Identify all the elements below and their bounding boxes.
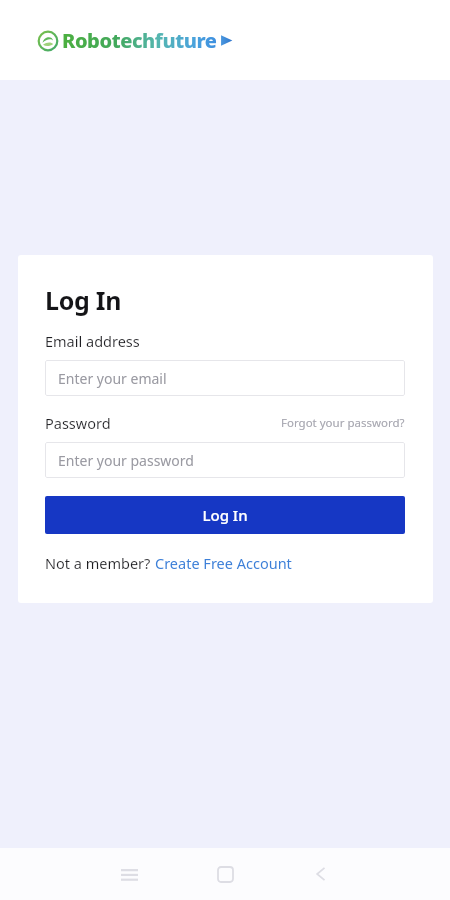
staticText: Enter your email (58, 369, 167, 388)
button[interactable]: Robotechfuture (38, 27, 233, 54)
staticText: Password (45, 413, 111, 433)
button[interactable]: Home (177, 848, 273, 900)
button[interactable]: Forgot your password? (281, 415, 405, 431)
staticText: Log In (45, 283, 122, 317)
staticText: Enter your password (58, 451, 194, 470)
staticText: Create Free Account (155, 553, 292, 573)
button[interactable]: Log In (45, 496, 405, 534)
staticText: Forgot your password? (281, 415, 405, 431)
button[interactable]: Create Free Account (155, 553, 292, 573)
staticText: Not a member? (45, 553, 155, 573)
staticText: Email address (45, 331, 140, 351)
button[interactable]: Enter your email (45, 360, 405, 396)
staticText: Robotechfuture (62, 27, 217, 54)
button[interactable]: Recent apps (81, 848, 177, 900)
staticText: Log In (202, 505, 248, 525)
button[interactable]: Enter your password (45, 442, 405, 478)
